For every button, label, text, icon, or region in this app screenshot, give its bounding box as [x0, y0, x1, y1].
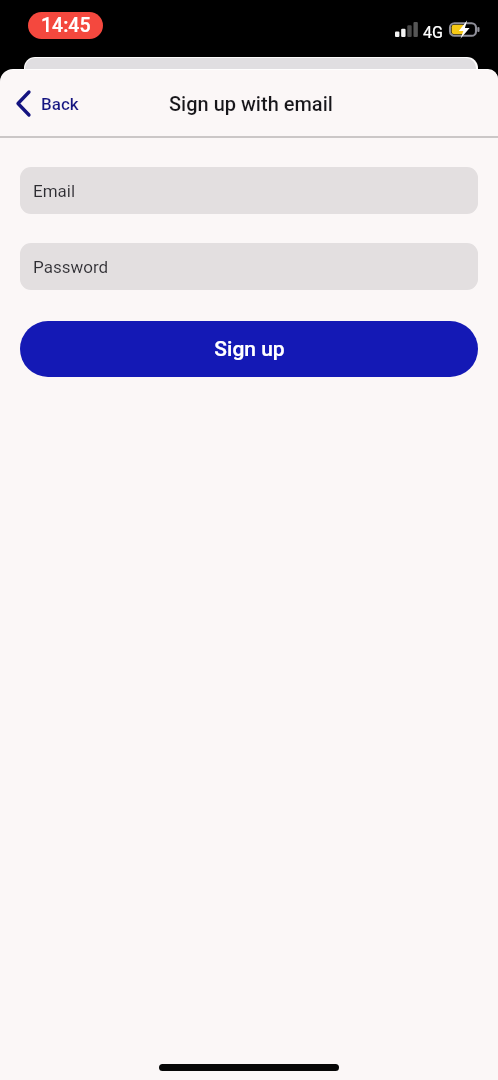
staticText: Password: [33, 257, 109, 277]
button[interactable]: Password: [20, 243, 478, 290]
staticText: 4G: [423, 23, 443, 42]
other: Battery charging: [447, 20, 481, 40]
staticText: Sign up: [214, 337, 285, 362]
staticText: Sign up with email: [169, 92, 333, 115]
staticText: 14:45: [41, 14, 91, 37]
button[interactable]: Back: [0, 82, 91, 125]
button[interactable]: Email: [20, 167, 478, 214]
other: Mobile signal: [395, 22, 419, 37]
staticText: Email: [33, 181, 76, 201]
staticText: Back: [41, 94, 79, 114]
button[interactable]: Sign up: [20, 321, 478, 377]
